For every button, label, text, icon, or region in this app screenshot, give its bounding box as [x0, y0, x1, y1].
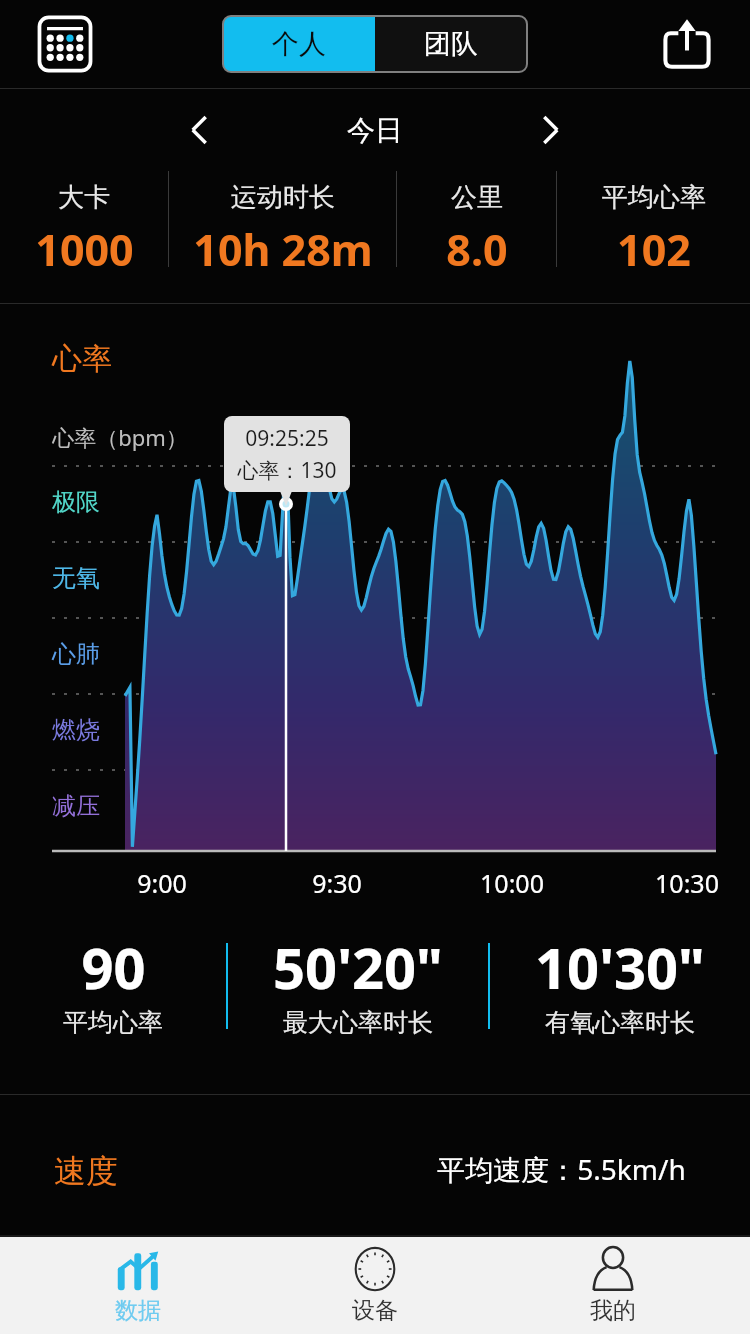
staticText: 8.0	[446, 220, 508, 279]
staticText: 平均心率	[63, 1007, 163, 1038]
button[interactable]: 运动时长	[169, 171, 396, 279]
staticText: 燃烧	[52, 715, 100, 745]
button[interactable]: 90	[0, 929, 226, 1038]
staticText: 10h 28m	[193, 220, 373, 279]
staticText: 平均心率	[602, 181, 706, 214]
staticText: 团队	[424, 27, 478, 61]
button[interactable]	[0, 304, 750, 1094]
staticText: 9:00	[137, 866, 187, 900]
button[interactable]: 50'20"	[228, 929, 488, 1038]
button[interactable]: 团队	[375, 16, 527, 72]
staticText: 平均速度：5.5km/h	[437, 1150, 686, 1188]
staticText: 9:30	[312, 866, 362, 900]
staticText: 102	[617, 220, 691, 279]
staticText: 09:25:25	[245, 424, 329, 453]
staticText: 极限	[52, 487, 100, 517]
staticText: 无氧	[52, 563, 100, 593]
staticText: 50'20"	[273, 929, 443, 1005]
button[interactable]: Share	[654, 11, 720, 77]
staticText: 心肺	[52, 639, 100, 669]
staticText: 个人	[272, 27, 326, 61]
staticText: 心率（bpm）	[52, 422, 188, 452]
button[interactable]: 平均心率	[557, 171, 750, 279]
button[interactable]: 大卡	[0, 171, 168, 279]
button[interactable]: 我的	[513, 1237, 713, 1334]
button[interactable]: Next day	[520, 100, 580, 160]
staticText: 数据	[115, 1296, 161, 1325]
staticText: 减压	[52, 791, 100, 821]
button[interactable]: 公里	[397, 171, 556, 279]
button[interactable]: 10'30"	[490, 929, 750, 1038]
button[interactable]: 速度	[0, 1095, 750, 1235]
staticText: 1000	[35, 220, 134, 279]
staticText: 设备	[352, 1296, 398, 1325]
staticText: 90	[81, 929, 146, 1005]
staticText: 我的	[590, 1296, 636, 1325]
button[interactable]: Calendar	[32, 11, 98, 77]
button[interactable]: 设备	[275, 1237, 475, 1334]
staticText: 心率：130	[237, 456, 337, 485]
staticText: 运动时长	[231, 181, 335, 214]
staticText: 10:00	[480, 866, 544, 900]
button[interactable]: 个人	[223, 16, 375, 72]
staticText: 速度	[54, 1151, 118, 1191]
staticText: 有氧心率时长	[545, 1007, 695, 1038]
button[interactable]: 数据	[38, 1237, 238, 1334]
staticText: 10:30	[655, 866, 719, 900]
button[interactable]: Previous day	[170, 100, 230, 160]
button[interactable]: 09:25:25	[224, 416, 350, 492]
staticText: 10'30"	[535, 929, 705, 1005]
staticText: 心率	[52, 340, 112, 378]
staticText: 公里	[451, 181, 503, 214]
staticText: 大卡	[58, 181, 110, 214]
staticText: 今日	[347, 113, 403, 148]
staticText: 最大心率时长	[283, 1007, 433, 1038]
